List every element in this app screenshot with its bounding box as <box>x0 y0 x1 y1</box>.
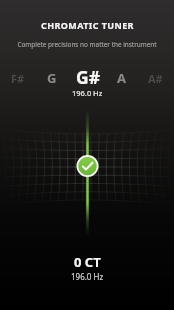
button[interactable]: A <box>101 66 141 90</box>
button[interactable]: G <box>32 66 72 90</box>
staticText: F# <box>11 71 25 86</box>
staticText: G <box>47 69 57 87</box>
button[interactable]: F# <box>0 66 38 90</box>
staticText: G# <box>76 65 100 89</box>
staticText: 196.0 Hz <box>71 271 104 282</box>
staticText: 0 CT <box>74 253 101 271</box>
button[interactable]: 196.0 Hz <box>47 88 127 98</box>
staticText: A# <box>148 71 163 86</box>
staticText: 196.0 Hz <box>72 88 103 98</box>
button[interactable]: A# <box>135 66 174 90</box>
staticText: A <box>117 69 126 87</box>
button[interactable]: G# <box>68 65 108 89</box>
staticText: Complete precisions no matter the instru… <box>17 40 157 49</box>
staticText: CHROMATIC TUNER <box>41 19 134 31</box>
